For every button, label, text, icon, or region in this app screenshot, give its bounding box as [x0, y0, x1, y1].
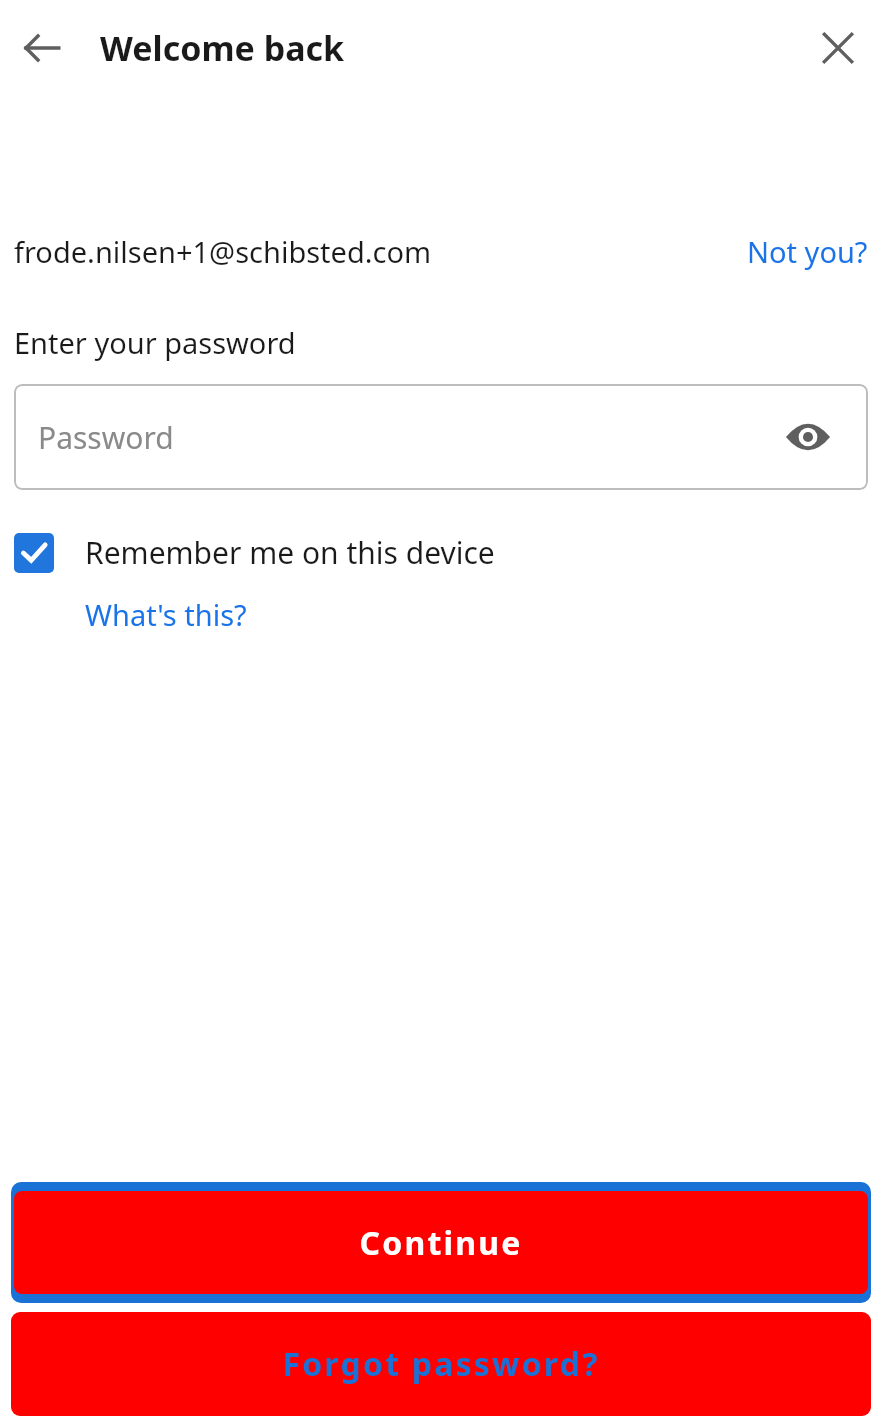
staticText: frode.nilsen+1@schibsted.com	[14, 232, 432, 271]
button[interactable]: Forgot password?	[11, 1312, 871, 1416]
staticText: Continue	[359, 1221, 523, 1265]
staticText: Enter your password	[14, 323, 296, 362]
button[interactable]: Not you?	[747, 232, 868, 271]
button[interactable]: What's this?	[85, 595, 247, 634]
staticText: Remember me on this device	[85, 532, 495, 573]
staticText: Forgot password?	[282, 1342, 600, 1386]
staticText: Welcome back	[100, 25, 345, 71]
button[interactable]: Back	[6, 12, 78, 84]
staticText: Not you?	[747, 232, 868, 271]
button[interactable]: Continue	[11, 1182, 871, 1303]
button[interactable]: Show password	[782, 411, 834, 463]
button[interactable]: Remember me on this device	[14, 532, 868, 573]
staticText: Password	[38, 417, 174, 458]
staticText: What's this?	[85, 595, 247, 634]
button[interactable]: Close	[802, 12, 874, 84]
button[interactable]: Password	[14, 384, 868, 490]
